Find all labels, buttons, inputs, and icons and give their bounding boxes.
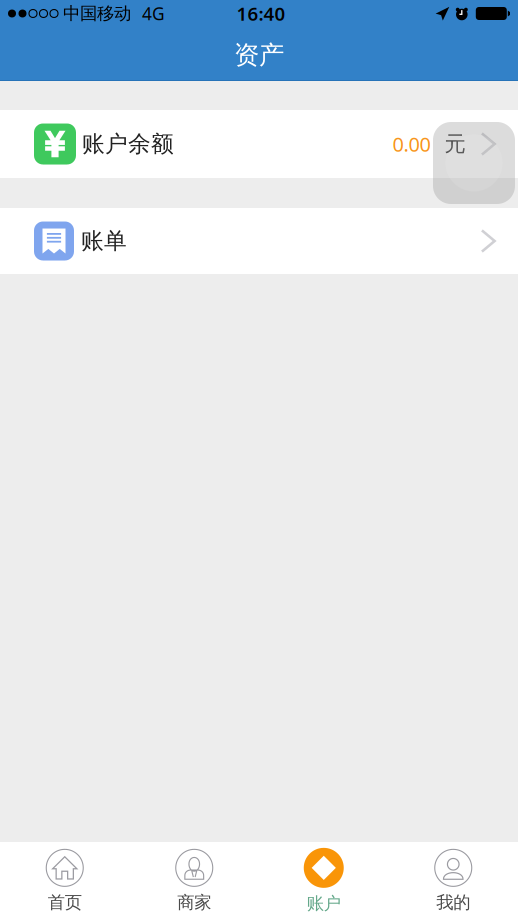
staticText: 我的 (436, 892, 470, 913)
button[interactable]: 账户 (259, 842, 388, 920)
staticText: 账单 (81, 227, 127, 255)
staticText: 元 (444, 131, 465, 157)
staticText: 中国移动 (63, 3, 131, 24)
staticText: 资产 (234, 39, 284, 70)
staticText: 16:40 (236, 1, 285, 26)
staticText: 4G (142, 2, 165, 25)
staticText: 0.00 (392, 131, 430, 157)
staticText: 商家 (177, 892, 211, 913)
staticText: 首页 (48, 892, 82, 913)
button[interactable]: 我的 (388, 842, 518, 920)
button[interactable]: 商家 (129, 842, 259, 920)
button[interactable]: 账户余额 (0, 110, 518, 178)
staticText: 账户余额 (82, 130, 174, 158)
button[interactable]: 首页 (0, 842, 129, 920)
button[interactable]: 账单 (0, 208, 518, 274)
staticText: 账户 (307, 893, 341, 914)
